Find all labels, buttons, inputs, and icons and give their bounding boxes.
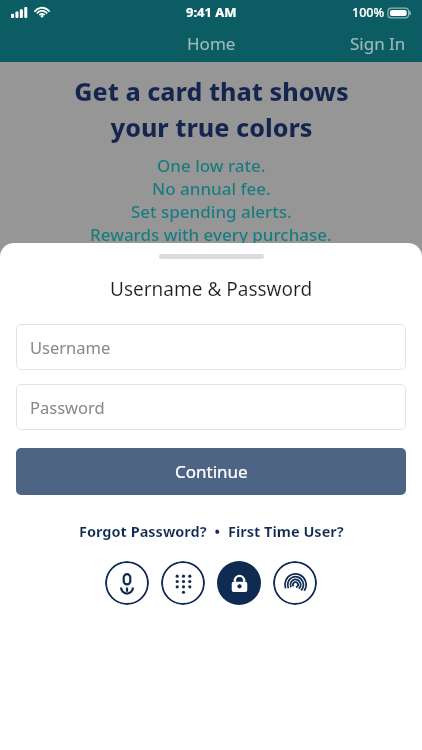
button[interactable]: Fingerprint login (273, 561, 317, 605)
staticText: your true colors (110, 110, 313, 144)
staticText: Username & Password (110, 276, 313, 302)
staticText: Password (30, 396, 105, 418)
staticText: 9:41 AM (186, 3, 237, 21)
staticText: Username (30, 336, 111, 358)
staticText: Continue (175, 460, 248, 483)
button[interactable]: Sign In (350, 32, 406, 55)
button[interactable]: Keypad login (161, 561, 205, 605)
staticText: One low rate. (157, 154, 266, 177)
staticText: Get a card that shows (74, 74, 349, 108)
staticText: Set spending alerts. (131, 200, 292, 223)
button[interactable]: Voice login (105, 561, 149, 605)
staticText: Rewards with every purchase. (90, 223, 332, 246)
staticText: No annual fee. (152, 177, 271, 200)
button[interactable]: Passcode login (217, 561, 261, 605)
button[interactable]: Home (187, 32, 236, 55)
button[interactable]: Username (16, 324, 406, 370)
staticText: 100% (352, 4, 385, 21)
staticText: • (207, 521, 228, 541)
button[interactable]: Forgot Password? (79, 521, 207, 541)
button[interactable]: First Time User? (228, 521, 344, 541)
button[interactable]: Password (16, 384, 406, 430)
button[interactable]: Continue (16, 448, 406, 495)
button[interactable]: Learn more (152, 254, 270, 284)
